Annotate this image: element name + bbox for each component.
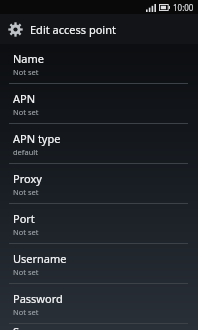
staticText: Username [13,251,67,266]
staticText: APN [13,91,36,106]
staticText: Port [13,211,35,226]
staticText: Not set [13,107,39,117]
button[interactable]: Server [0,324,198,330]
staticText: default [13,147,38,157]
button[interactable]: Username [0,244,198,283]
button[interactable]: Settings [0,14,198,44]
staticText: Not set [13,187,39,197]
staticText: Password [13,291,63,306]
button[interactable]: APN [0,84,198,123]
staticText: Name [13,51,45,66]
button[interactable]: Port [0,204,198,243]
button[interactable]: Password [0,284,198,323]
staticText: Not set [13,227,39,237]
staticText: Proxy [13,171,42,186]
staticText: APN type [13,131,61,146]
button[interactable]: Name [0,44,198,83]
staticText: 10:00 [173,2,194,13]
other: Settings [6,20,24,38]
button[interactable]: APN type [0,124,198,163]
staticText: Edit access point [30,22,116,37]
staticText: Server [13,324,47,330]
staticText: Not set [13,67,39,77]
staticText: Not set [13,307,39,317]
button[interactable]: Proxy [0,164,198,203]
staticText: Not set [13,267,39,277]
